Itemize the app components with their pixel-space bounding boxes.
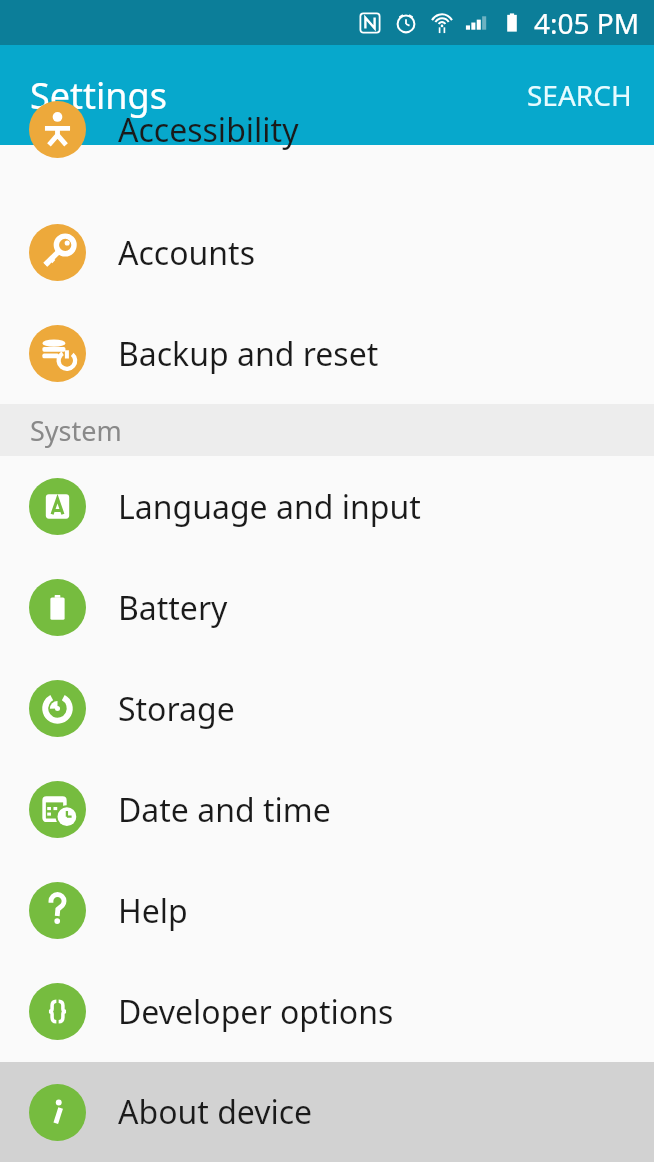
button[interactable]: Date and time bbox=[0, 759, 654, 860]
button[interactable]: Help bbox=[0, 860, 654, 961]
button[interactable]: SEARCH bbox=[505, 56, 654, 134]
staticText: Storage bbox=[118, 687, 235, 731]
staticText: About device bbox=[118, 1090, 313, 1134]
staticText: System bbox=[30, 412, 122, 449]
button[interactable]: Accessibility bbox=[0, 145, 654, 202]
button[interactable]: Developer options bbox=[0, 961, 654, 1062]
staticText: Backup and reset bbox=[118, 332, 379, 376]
staticText: Developer options bbox=[118, 990, 394, 1034]
staticText: Settings bbox=[30, 71, 167, 120]
staticText: Accessibility bbox=[118, 108, 299, 152]
staticText: SEARCH bbox=[527, 76, 632, 114]
staticText: Language and input bbox=[118, 485, 421, 529]
staticText: 4:05 PM bbox=[534, 4, 640, 42]
button[interactable]: Language and input bbox=[0, 456, 654, 557]
button[interactable]: Storage bbox=[0, 658, 654, 759]
staticText: Date and time bbox=[118, 788, 331, 832]
staticText: Battery bbox=[118, 586, 228, 630]
button[interactable]: Battery bbox=[0, 557, 654, 658]
button[interactable]: About device bbox=[0, 1062, 654, 1162]
button[interactable]: Backup and reset bbox=[0, 303, 654, 404]
staticText: Help bbox=[118, 889, 188, 933]
staticText: Accounts bbox=[118, 231, 255, 275]
button[interactable]: Accounts bbox=[0, 202, 654, 303]
